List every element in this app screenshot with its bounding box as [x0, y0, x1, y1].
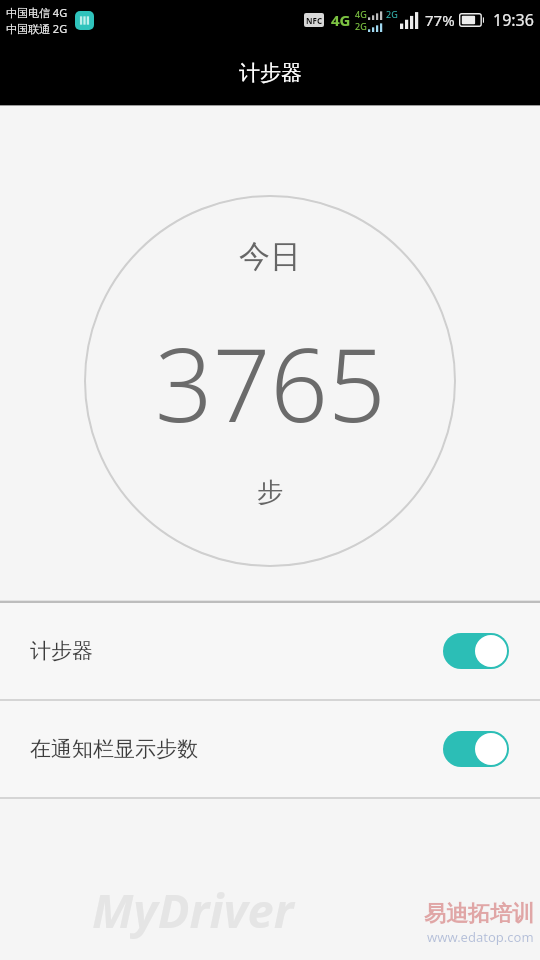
staticText: 计步器 [30, 638, 93, 664]
button[interactable]: Toggle [443, 633, 509, 669]
staticText: 计步器 [239, 60, 302, 86]
staticText: 4G [331, 10, 351, 30]
staticText: 19:36 [493, 9, 534, 31]
button[interactable]: Toggle [443, 731, 509, 767]
staticText: www.edatop.com [427, 928, 534, 946]
staticText: 77% [425, 10, 455, 30]
staticText: 易迪拓培训 [424, 900, 534, 928]
staticText: 中国电信 4G [6, 5, 68, 20]
staticText: 2G [386, 8, 398, 20]
staticText: 4G [355, 8, 367, 20]
button[interactable]: 在通知栏显示步数 [0, 701, 540, 797]
staticText: 在通知栏显示步数 [30, 736, 198, 762]
staticText: 2G [355, 20, 367, 32]
staticText: MyDriver [92, 878, 294, 942]
staticText: 中国联通 2G [6, 21, 68, 36]
staticText: NFC [306, 15, 323, 26]
button[interactable]: 计步器 [0, 603, 540, 699]
staticText: 3765 [155, 314, 386, 452]
staticText: 步 [257, 476, 283, 509]
staticText: 今日 [239, 237, 301, 276]
